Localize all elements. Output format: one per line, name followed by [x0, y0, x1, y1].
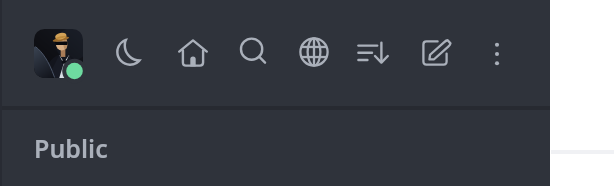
button[interactable]: Search	[232, 30, 276, 74]
button[interactable]: Sort	[351, 31, 395, 75]
button[interactable]: Explore	[292, 30, 336, 74]
button[interactable]: More options	[475, 32, 519, 76]
staticText: Public	[34, 131, 108, 165]
button[interactable]: Compose	[413, 31, 457, 75]
button[interactable]: Profile	[34, 29, 87, 82]
button[interactable]: Home	[171, 31, 215, 75]
button[interactable]: Night mode	[108, 30, 152, 74]
